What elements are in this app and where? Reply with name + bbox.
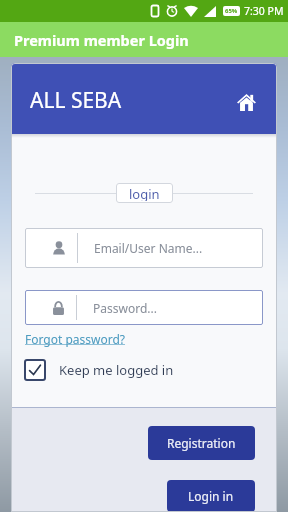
staticText: Premium member Login — [14, 30, 189, 50]
button[interactable]: Registration — [148, 426, 255, 460]
button[interactable]: Password... — [25, 290, 263, 325]
button[interactable]: Email/User Name... — [25, 228, 263, 268]
staticText: Keep me logged in — [59, 361, 174, 379]
staticText: ALL SEBA — [30, 86, 122, 115]
staticText: Email/User Name... — [94, 240, 203, 256]
staticText: login — [129, 185, 160, 201]
button[interactable]: login — [116, 183, 173, 203]
staticText: Password... — [93, 300, 157, 316]
button[interactable]: Login in — [167, 480, 255, 512]
staticText: Login in — [188, 488, 234, 504]
button[interactable]: Keep me logged in — [24, 359, 174, 381]
staticText: 65% — [225, 7, 238, 15]
button[interactable]: Forgot password? — [25, 331, 126, 347]
staticText: 7:30 PM — [244, 4, 284, 18]
button[interactable] — [235, 91, 257, 113]
staticText: Registration — [167, 435, 236, 451]
